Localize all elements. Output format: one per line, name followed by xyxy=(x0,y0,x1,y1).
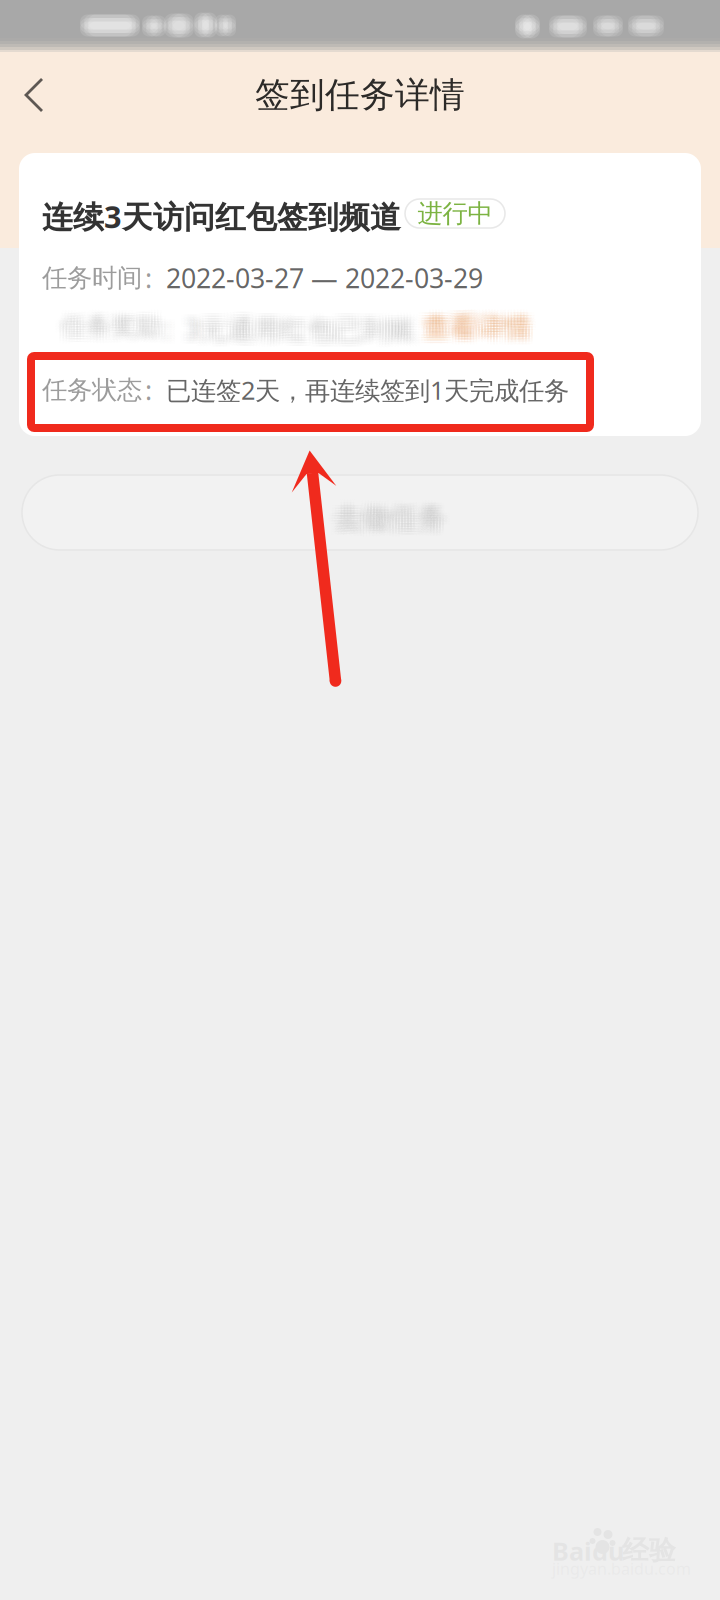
staticText: 任务奖励 xyxy=(67,316,167,347)
staticText: 去做任务 xyxy=(337,498,449,533)
staticText: : xyxy=(161,316,168,351)
staticText: 3元通用红包已到账 xyxy=(179,306,410,341)
staticText: 3元通用红包已到账 xyxy=(188,311,419,346)
staticText: : xyxy=(164,306,171,341)
staticText: 连续3天访问红包签到频道 xyxy=(42,196,401,237)
staticText: 任务奖励 xyxy=(67,308,167,340)
staticText: 3元通用红包已到账 xyxy=(185,306,416,341)
staticText: 任务奖励 xyxy=(64,311,164,342)
staticText: 任务奖励 xyxy=(64,316,164,347)
staticText: 查看详情 xyxy=(426,313,534,346)
staticText: 查看详情 xyxy=(429,316,537,349)
button[interactable]: 返回 xyxy=(0,55,68,135)
staticText: 查看详情 xyxy=(423,311,531,344)
staticText: 3元通用红包已到账 xyxy=(191,316,422,351)
staticText: 查看详情 xyxy=(429,306,537,339)
staticText: 任务奖励 xyxy=(64,313,164,345)
staticText: Baidu xyxy=(552,1534,624,1568)
staticText: jingyan.baidu.com xyxy=(552,1558,691,1579)
staticText: 查看详情 xyxy=(417,311,525,344)
staticText: 查看详情 xyxy=(429,308,537,341)
staticText: 去做任务 xyxy=(340,496,452,530)
staticText: 任务奖励 xyxy=(58,308,158,340)
staticText: 3元通用红包已到账 xyxy=(185,313,416,349)
staticText: 任务奖励 xyxy=(58,316,158,347)
staticText: 去做任务 xyxy=(337,503,449,538)
staticText: 查看详情 xyxy=(423,313,531,346)
staticText: : xyxy=(158,308,165,344)
staticText: 2022-03-27 — 2022-03-29 xyxy=(166,260,483,296)
staticText: 去做任务 xyxy=(331,498,443,533)
staticText: 去做任务 xyxy=(328,498,440,533)
staticText: 任务奖励 xyxy=(55,306,155,337)
staticText: 去做任务 xyxy=(340,506,452,540)
staticText: : xyxy=(158,313,165,349)
staticText: 查看详情 xyxy=(417,306,525,339)
staticText: 任务状态 xyxy=(42,374,142,405)
staticText: : xyxy=(145,372,152,408)
button[interactable]: 去做任务 xyxy=(22,475,698,550)
staticText: 任务奖励 xyxy=(58,313,158,345)
staticText: 3元通用红包已到账 xyxy=(182,308,413,344)
staticText: 3元通用红包已到账 xyxy=(179,308,410,344)
staticText: : xyxy=(161,313,168,349)
staticText: 查看详情 xyxy=(417,308,525,341)
staticText: : xyxy=(158,316,165,351)
staticText: 去做任务 xyxy=(334,503,446,538)
staticText: 查看详情 xyxy=(417,313,525,346)
staticText: 去做任务 xyxy=(334,496,446,530)
staticText: 3元通用红包已到账 xyxy=(182,311,413,346)
staticText: 3元通用红包已到账 xyxy=(188,313,419,349)
staticText: 任务奖励 xyxy=(55,308,155,340)
staticText: 去做任务 xyxy=(340,498,452,533)
staticText: 查看详情 xyxy=(420,308,528,341)
staticText: 3元通用红包已到账 xyxy=(188,308,419,344)
staticText: 查看详情 xyxy=(423,306,531,339)
staticText: 去做任务 xyxy=(334,501,446,535)
staticText: 3元通用红包已到账 xyxy=(191,306,422,341)
staticText: 3元通用红包已到账 xyxy=(182,313,413,349)
staticText: 去做任务 xyxy=(340,501,452,535)
staticText: 3元通用红包已到账 xyxy=(179,313,410,349)
staticText: 3元通用红包已到账 xyxy=(182,306,413,341)
staticText: 3元通用红包已到账 xyxy=(191,311,422,346)
staticText: 任务奖励 xyxy=(64,308,164,340)
staticText: : xyxy=(161,308,168,344)
staticText: 去做任务 xyxy=(334,506,446,540)
staticText: : xyxy=(164,313,171,349)
staticText: : xyxy=(158,311,165,346)
staticText: 任务奖励 xyxy=(67,306,167,337)
staticText: 查看详情 xyxy=(420,306,528,339)
staticText: 任务奖励 xyxy=(61,316,161,347)
staticText: 任务奖励 xyxy=(67,313,167,345)
staticText: : xyxy=(164,316,171,351)
staticText: 3元通用红包已到账 xyxy=(188,316,419,351)
staticText: : xyxy=(145,260,152,296)
staticText: : xyxy=(161,311,168,346)
staticText: 任务奖励 xyxy=(61,311,161,342)
staticText: 3元通用红包已到账 xyxy=(191,313,422,349)
staticText: 查看详情 xyxy=(417,316,525,349)
staticText: 查看详情 xyxy=(426,311,534,344)
staticText: : xyxy=(164,308,171,344)
staticText: 去做任务 xyxy=(328,501,440,535)
staticText: 任务奖励 xyxy=(55,313,155,345)
staticText: 查看详情 xyxy=(423,316,531,349)
staticText: 查看详情 xyxy=(420,313,528,346)
staticText: 3元通用红包已到账 xyxy=(179,316,410,351)
staticText: 任务时间 xyxy=(42,262,142,293)
staticText: 进行中 xyxy=(417,198,492,229)
staticText: 任务奖励 xyxy=(61,306,161,337)
staticText: : xyxy=(161,306,168,341)
staticText: 去做任务 xyxy=(328,496,440,530)
staticText: 任务奖励 xyxy=(55,316,155,347)
staticText: 3元通用红包已到账 xyxy=(179,311,410,346)
staticText: 查看详情 xyxy=(423,308,531,341)
staticText: 已连签2天，再连续签到1天完成任务 xyxy=(166,373,569,407)
